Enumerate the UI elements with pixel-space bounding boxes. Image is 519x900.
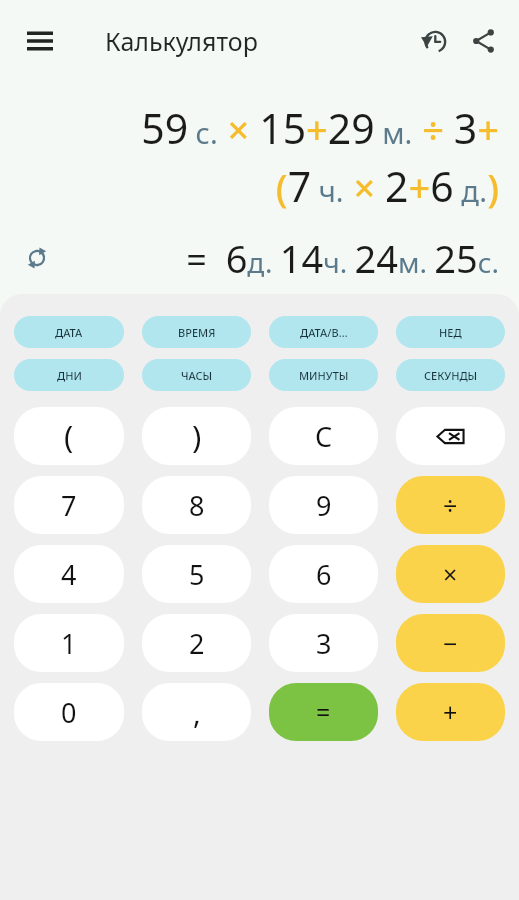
button[interactable]: 7: [14, 476, 124, 534]
staticText: ВРЕМЯ: [178, 325, 216, 340]
button[interactable]: ВРЕМЯ: [142, 316, 251, 348]
button[interactable]: Share: [459, 16, 509, 66]
button[interactable]: History: [409, 16, 459, 66]
staticText: 7: [61, 487, 77, 524]
button[interactable]: 3: [269, 614, 378, 672]
staticText: +: [443, 695, 458, 729]
staticText: ,: [193, 693, 201, 732]
staticText: −: [443, 626, 458, 660]
staticText: ДАТА/В…: [300, 325, 348, 340]
button[interactable]: 1: [14, 614, 124, 672]
button[interactable]: 5: [142, 545, 251, 603]
button[interactable]: 4: [14, 545, 124, 603]
button[interactable]: Change result format: [20, 241, 54, 275]
staticText: ЧАСЫ: [181, 368, 213, 383]
button[interactable]: МИНУТЫ: [269, 359, 378, 391]
staticText: 0: [61, 694, 77, 731]
button[interactable]: (: [14, 407, 124, 465]
staticText: 3: [316, 625, 332, 662]
staticText: = 6д. 14ч. 24м. 25с.: [54, 232, 499, 284]
staticText: Калькулятор: [105, 24, 258, 58]
button[interactable]: −: [396, 614, 505, 672]
staticText: =: [316, 695, 331, 729]
button[interactable]: ДАТА: [14, 316, 124, 348]
button[interactable]: ,: [142, 683, 251, 741]
button[interactable]: ): [142, 407, 251, 465]
button[interactable]: НЕД: [396, 316, 505, 348]
staticText: 4: [61, 556, 77, 593]
button[interactable]: 2: [142, 614, 251, 672]
staticText: МИНУТЫ: [299, 368, 349, 383]
button[interactable]: Menu: [16, 17, 64, 65]
button[interactable]: 8: [142, 476, 251, 534]
staticText: (: [64, 415, 74, 457]
button[interactable]: ÷: [396, 476, 505, 534]
staticText: 59 с. × 15+29 м. ÷ 3+ (7 ч. × 2+6 д.): [20, 100, 499, 214]
staticText: 6: [316, 556, 332, 593]
staticText: 1: [61, 625, 77, 662]
staticText: ÷: [443, 488, 458, 522]
button[interactable]: ×: [396, 545, 505, 603]
button[interactable]: 6: [269, 545, 378, 603]
staticText: ДНИ: [57, 368, 82, 383]
button[interactable]: =: [269, 683, 378, 741]
staticText: 5: [189, 556, 205, 593]
staticText: 2: [189, 625, 205, 662]
staticText: 9: [316, 487, 332, 524]
staticText: СЕКУНДЫ: [424, 368, 478, 383]
button[interactable]: ДНИ: [14, 359, 124, 391]
staticText: ×: [443, 557, 458, 591]
button[interactable]: Backspace: [396, 407, 505, 465]
button[interactable]: ДАТА/В…: [269, 316, 378, 348]
button[interactable]: +: [396, 683, 505, 741]
staticText: 8: [189, 487, 205, 524]
staticText: ): [192, 415, 202, 457]
button[interactable]: 0: [14, 683, 124, 741]
button[interactable]: ЧАСЫ: [142, 359, 251, 391]
staticText: ДАТА: [55, 325, 83, 340]
staticText: НЕД: [439, 325, 462, 340]
button[interactable]: СЕКУНДЫ: [396, 359, 505, 391]
button[interactable]: 9: [269, 476, 378, 534]
staticText: C: [315, 418, 333, 455]
button[interactable]: C: [269, 407, 378, 465]
